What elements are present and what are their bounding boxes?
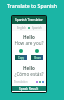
button[interactable]: Speak Result <box>12 86 46 91</box>
staticText: ¿Cómo estás? <box>12 71 46 77</box>
staticText: English <box>17 26 26 30</box>
staticText: Spanish <box>32 26 42 30</box>
staticText: How are you? <box>12 40 46 46</box>
staticText: Hello <box>12 34 46 40</box>
staticText: Share <box>34 56 41 60</box>
staticText: Hello <box>12 65 46 71</box>
staticText: Copy <box>18 56 25 60</box>
button[interactable]: Share <box>31 49 43 60</box>
button[interactable]: Copy <box>15 49 27 60</box>
staticText: Spanish Translator <box>15 18 43 22</box>
staticText: Translate to Spanish <box>0 2 64 9</box>
staticText: Translation <box>14 80 28 84</box>
staticText: Speak Result <box>19 87 39 91</box>
